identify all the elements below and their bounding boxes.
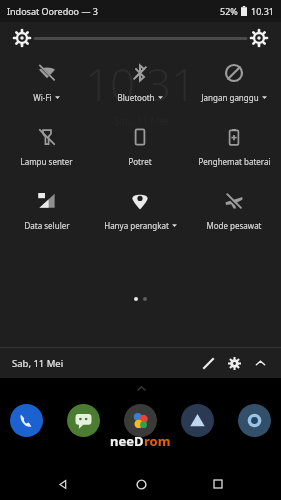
staticText: Bluetooth: [117, 92, 155, 103]
button[interactable]: Potret: [93, 124, 187, 170]
button[interactable]: Lampu senter: [0, 124, 93, 170]
button[interactable]: Wi-Fi: [0, 60, 93, 106]
staticText: Wi-Fi: [33, 92, 52, 103]
button[interactable]: Recents: [203, 469, 233, 499]
staticText: Hanya perangkat: [104, 220, 169, 231]
button[interactable]: Sab, 11 Mei: [12, 357, 64, 370]
staticText: Potret: [128, 156, 152, 167]
button[interactable]: Edit: [195, 350, 221, 376]
button[interactable]: Drive: [181, 404, 214, 437]
staticText: 10.31: [251, 5, 275, 17]
button[interactable]: [35, 25, 246, 51]
staticText: Indosat Ooredoo — 3: [7, 5, 98, 17]
button[interactable]: Hanya perangkat: [93, 188, 187, 234]
staticText: Jangan ganggu: [201, 92, 259, 103]
button[interactable]: Photos: [124, 404, 157, 437]
button[interactable]: Messages: [67, 404, 100, 437]
staticText: 52%: [220, 5, 238, 17]
button[interactable]: Penghemat baterai: [187, 124, 281, 170]
button[interactable]: Brightness: [9, 25, 35, 51]
button[interactable]: Bluetooth: [93, 60, 187, 106]
staticText: rom: [144, 432, 171, 450]
button[interactable]: Collapse: [247, 350, 273, 376]
button[interactable]: Back: [48, 469, 78, 499]
button[interactable]: Home: [126, 469, 156, 499]
staticText: Penghemat baterai: [198, 156, 271, 167]
staticText: Mode pesawat: [206, 220, 262, 231]
staticText: neeD: [110, 432, 144, 450]
button[interactable]: Jangan ganggu: [187, 60, 281, 106]
button[interactable]: All apps: [134, 381, 148, 395]
button[interactable]: Auto brightness: [246, 25, 272, 51]
staticText: 10:31: [85, 54, 197, 114]
button[interactable]: Settings: [221, 350, 247, 376]
button[interactable]: Camera: [238, 404, 271, 437]
staticText: Lampu senter: [20, 156, 73, 167]
button[interactable]: Data seluler: [0, 188, 93, 234]
staticText: Data seluler: [24, 220, 70, 231]
button[interactable]: Mode pesawat: [187, 188, 281, 234]
button[interactable]: Phone: [10, 404, 43, 437]
